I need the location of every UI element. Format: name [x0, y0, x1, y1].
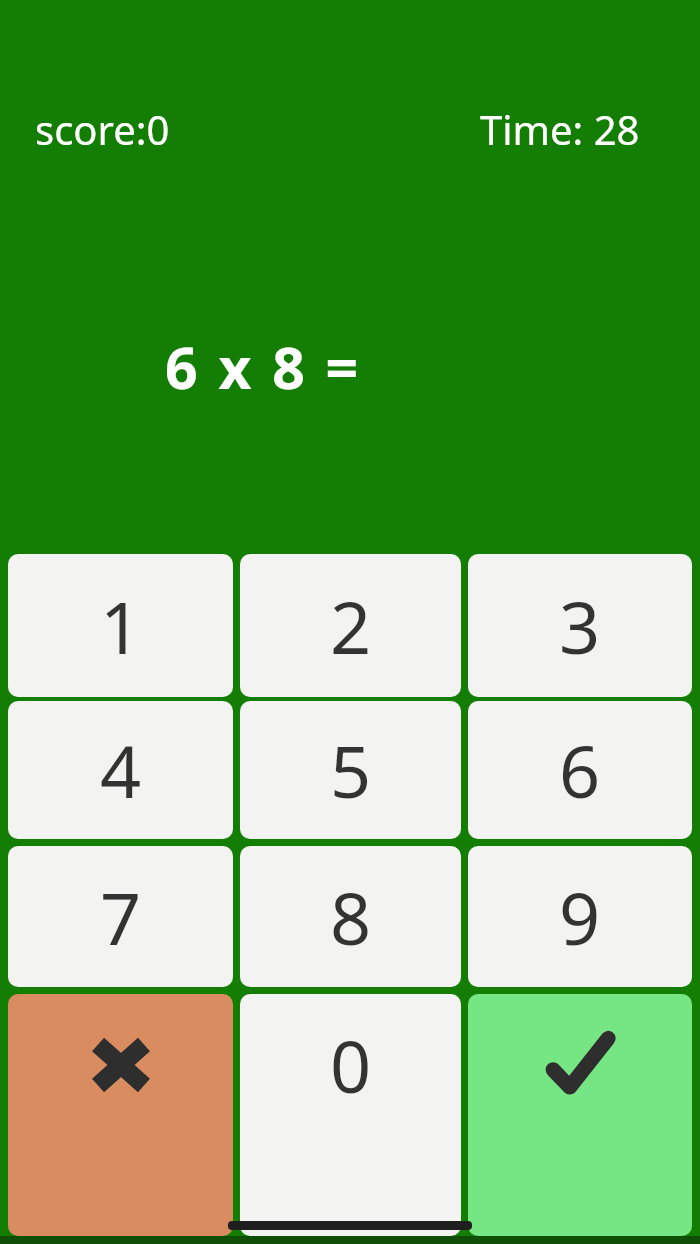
button[interactable] — [8, 994, 233, 1236]
button[interactable]: 0 — [240, 994, 461, 1236]
button[interactable]: 7 — [8, 846, 233, 987]
staticText: 8 — [330, 868, 372, 966]
staticText: 5 — [330, 721, 372, 819]
staticText: 4 — [100, 721, 142, 819]
staticText: 7 — [100, 868, 142, 966]
staticText: Time: 28 — [480, 102, 640, 156]
button[interactable]: 9 — [468, 846, 692, 987]
button[interactable]: 3 — [468, 554, 692, 697]
button[interactable]: 4 — [8, 701, 233, 839]
staticText: score:0 — [35, 102, 170, 156]
staticText: 6 x 8 = — [165, 328, 362, 406]
staticText: 3 — [559, 577, 601, 675]
button[interactable]: 5 — [240, 701, 461, 839]
staticText: 2 — [330, 577, 372, 675]
button[interactable] — [468, 994, 692, 1236]
button[interactable]: 8 — [240, 846, 461, 987]
staticText: 0 — [330, 1016, 372, 1114]
button[interactable]: 2 — [240, 554, 461, 697]
button[interactable]: 6 — [468, 701, 692, 839]
staticText: 6 — [559, 721, 601, 819]
staticText: 1 — [100, 577, 142, 675]
button[interactable]: 1 — [8, 554, 233, 697]
staticText: 9 — [559, 868, 601, 966]
